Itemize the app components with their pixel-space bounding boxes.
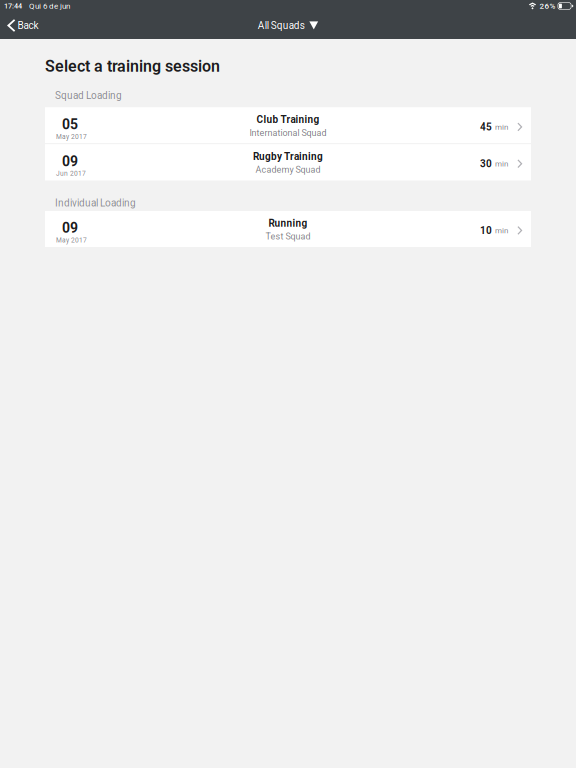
staticText: Test Squad <box>265 231 310 242</box>
button[interactable]: Back <box>0 12 48 39</box>
button[interactable]: 09 <box>45 211 531 247</box>
staticText: Jun 2017 <box>56 170 86 177</box>
staticText: 09 <box>62 220 78 236</box>
staticText: Club Training <box>256 114 319 125</box>
staticText: Back <box>17 20 38 31</box>
staticText: 17:44 <box>4 2 22 10</box>
staticText: Rugby Training <box>253 151 323 162</box>
button[interactable]: 05 <box>45 107 531 143</box>
staticText: min <box>495 226 508 235</box>
staticText: Running <box>268 217 307 229</box>
staticText: Select a training session <box>45 57 220 76</box>
staticText: 26% <box>540 1 556 11</box>
staticText: Individual Loading <box>55 197 136 209</box>
staticText: 45 <box>480 121 492 133</box>
staticText: 30 <box>480 158 492 170</box>
staticText: 05 <box>62 116 78 133</box>
staticText: Qui 6 de jun <box>29 1 70 11</box>
staticText: May 2017 <box>56 133 87 141</box>
button[interactable]: 09 <box>45 144 531 180</box>
staticText: 10 <box>480 225 492 236</box>
staticText: min <box>495 159 508 168</box>
staticText: 09 <box>62 153 78 170</box>
staticText: May 2017 <box>56 236 87 244</box>
staticText: Squad Loading <box>55 90 122 101</box>
staticText: All Squads <box>258 20 305 31</box>
button[interactable]: All Squads <box>248 12 328 39</box>
staticText: min <box>495 122 508 132</box>
staticText: International Squad <box>249 128 326 138</box>
staticText: Academy Squad <box>255 164 320 175</box>
